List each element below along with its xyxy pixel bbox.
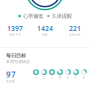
staticText: 97 (6, 69, 16, 80)
staticText: 二 (42, 76, 45, 79)
staticText: 四 (58, 76, 61, 79)
staticText: 三 (50, 76, 53, 79)
staticText: 221 (69, 24, 81, 33)
staticText: 一 (34, 76, 37, 79)
staticText: 五 (66, 76, 69, 79)
staticText: 日 (82, 76, 85, 79)
staticText: 本周完成情况 (6, 59, 30, 64)
staticText: 1424 (37, 24, 53, 33)
staticText: 六 (74, 76, 77, 79)
staticText: 活动千卡 (9, 33, 21, 36)
staticText: 完成度 (6, 80, 15, 83)
staticText: 久坐提醒 (50, 13, 72, 19)
staticText: 1397 (7, 24, 23, 33)
staticText: 每日目标 (6, 52, 26, 59)
staticText: 心率偏低 (21, 13, 43, 19)
staticText: 活动分钟 (69, 33, 81, 36)
staticText: 步数 (42, 33, 48, 36)
